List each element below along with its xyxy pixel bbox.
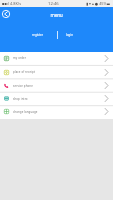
staticText: ▪▪ıl 4.8K/s [2, 1, 22, 6]
staticText: login [66, 33, 74, 37]
staticText: menu [50, 12, 63, 19]
staticText: ▮ ▾ ▴ ● 45%▬ [86, 1, 111, 6]
button[interactable]: shop intro [0, 93, 113, 106]
button[interactable]: change language [0, 106, 113, 119]
button[interactable]: place of receipt [0, 66, 113, 80]
button[interactable]: login [58, 31, 81, 39]
staticText: 12:46 [48, 1, 59, 7]
staticText: place of receipt [13, 70, 36, 74]
button[interactable]: Back [1, 9, 11, 19]
staticText: shop intro [13, 97, 28, 101]
button[interactable]: my order [0, 52, 113, 66]
button[interactable]: service phone [0, 80, 113, 93]
staticText: register [32, 33, 44, 37]
staticText: my order [13, 56, 26, 60]
staticText: change language [13, 110, 38, 114]
button[interactable]: register [24, 31, 52, 39]
staticText: service phone [13, 84, 33, 88]
